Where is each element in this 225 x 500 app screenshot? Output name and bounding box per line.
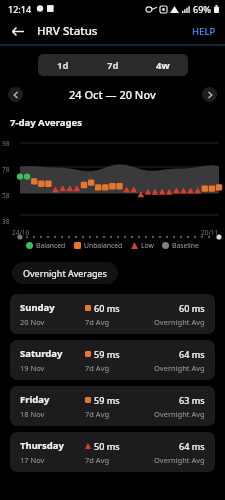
staticText: 24/10 [12,228,30,237]
staticText: 64 ms [179,348,205,360]
staticText: 59 ms [94,348,120,360]
button[interactable]: Previous range [8,87,23,102]
staticText: 64 ms [179,440,205,452]
button[interactable]: Next range [202,87,217,102]
staticText: Low [141,241,154,250]
staticText: 7-day Averages [10,116,82,129]
staticText: HRV Status [37,23,98,39]
staticText: 98 [2,139,10,148]
staticText: Overnight Avg [154,363,205,373]
staticText: 17 Nov [20,455,45,465]
staticText: 60 ms [94,302,120,314]
staticText: 38 [2,217,10,226]
staticText: Thursday [20,439,64,452]
staticText: Friday [20,393,50,406]
staticText: 7d Avg [85,409,110,419]
staticText: 24 Oct — 20 Nov [69,87,156,102]
staticText: 78 [2,165,10,174]
staticText: 20 Nov [20,317,45,327]
staticText: 4w [156,59,170,72]
staticText: 69% [193,3,211,15]
button[interactable]: 7d [88,54,138,76]
button[interactable]: Overnight Averages [12,262,118,284]
button[interactable]: HELP [189,22,219,41]
button[interactable]: 1d [38,54,88,76]
staticText: 20/11 [201,228,219,237]
staticText: 63 ms [179,394,205,406]
staticText: 50 ms [94,440,120,452]
button[interactable]: Thursday [10,432,215,472]
staticText: 7d Avg [85,317,110,327]
staticText: 58 [2,191,10,200]
button[interactable]: Sunday [10,294,215,334]
staticText: Overnight Avg [154,455,205,465]
staticText: Overnight Averages [23,267,107,279]
button[interactable]: Saturday [10,340,215,380]
button[interactable]: Friday [10,386,215,426]
staticText: 7d Avg [85,363,110,373]
staticText: 1d [57,59,69,72]
button[interactable]: Back [4,18,30,44]
staticText: 18 Nov [20,409,45,419]
staticText: 19 Nov [20,363,45,373]
staticText: 59 ms [94,394,120,406]
button[interactable]: 4w [138,54,188,76]
staticText: Sunday [20,301,55,314]
staticText: Unbalanced [84,241,123,250]
staticText: Balanced [36,241,66,250]
staticText: Saturday [20,347,63,360]
staticText: 7d [107,59,119,72]
staticText: Overnight Avg [154,409,205,419]
staticText: HELP [192,25,216,38]
staticText: 60 ms [179,302,205,314]
staticText: 12:14 [8,3,32,15]
staticText: Overnight Avg [154,317,205,327]
staticText: 7d Avg [85,455,110,465]
staticText: Baseline [172,241,199,250]
